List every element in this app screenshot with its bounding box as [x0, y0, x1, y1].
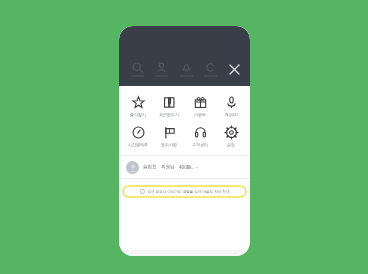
button[interactable]: 공지사항: [154, 126, 184, 147]
staticText: 회원님: [161, 164, 175, 170]
staticText: 시간별예측: [128, 142, 148, 147]
staticText: 공지사항: [161, 142, 177, 147]
staticText: 설정: [227, 142, 235, 147]
staticText: 슬림한: [143, 164, 157, 170]
staticText: 4008k.: [179, 164, 193, 170]
button[interactable]: 신규 공유나 이야기도 경험을 신규 마음도 찾아 찾네: [122, 185, 247, 198]
button[interactable]: NLJOU: [216, 96, 246, 117]
staticText: 신규 공유나 이야기도 경험을 신규 마음도 찾아 찾네: [147, 189, 230, 194]
staticText: 최근본지기: [159, 112, 179, 117]
button[interactable]: 고객센터: [185, 126, 215, 147]
button[interactable]: Menu item: [175, 62, 197, 77]
button[interactable]: Close: [224, 59, 244, 79]
button[interactable]: 설정: [216, 126, 246, 147]
button[interactable]: 슬림한: [119, 156, 250, 178]
button[interactable]: Menu item: [126, 62, 148, 77]
staticText: ···: [195, 164, 199, 170]
button[interactable]: 즐겨찾기: [123, 96, 153, 117]
staticText: 고객센터: [192, 142, 208, 147]
button[interactable]: Menu item: [150, 62, 172, 77]
staticText: 즐겨찾기: [130, 112, 146, 117]
button[interactable]: 시간별예측: [123, 126, 153, 147]
button[interactable]: 최근본지기: [154, 96, 184, 117]
button[interactable]: Menu item: [199, 62, 221, 77]
button[interactable]: 이벤트: [185, 96, 215, 117]
staticText: 이벤트: [194, 112, 206, 117]
staticText: NLJOU: [225, 112, 238, 117]
